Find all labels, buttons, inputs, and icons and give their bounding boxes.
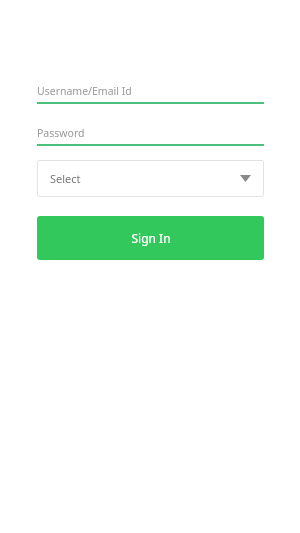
staticText: Password <box>37 126 85 140</box>
button[interactable]: Select <box>37 160 264 197</box>
staticText: Sign In <box>131 230 171 246</box>
other: Open dropdown <box>240 175 251 182</box>
button[interactable]: Username/Email Id <box>37 84 264 104</box>
button[interactable]: Password <box>37 126 264 146</box>
button[interactable]: Sign In <box>37 216 264 260</box>
staticText: Username/Email Id <box>37 84 132 98</box>
staticText: Select <box>50 171 81 186</box>
